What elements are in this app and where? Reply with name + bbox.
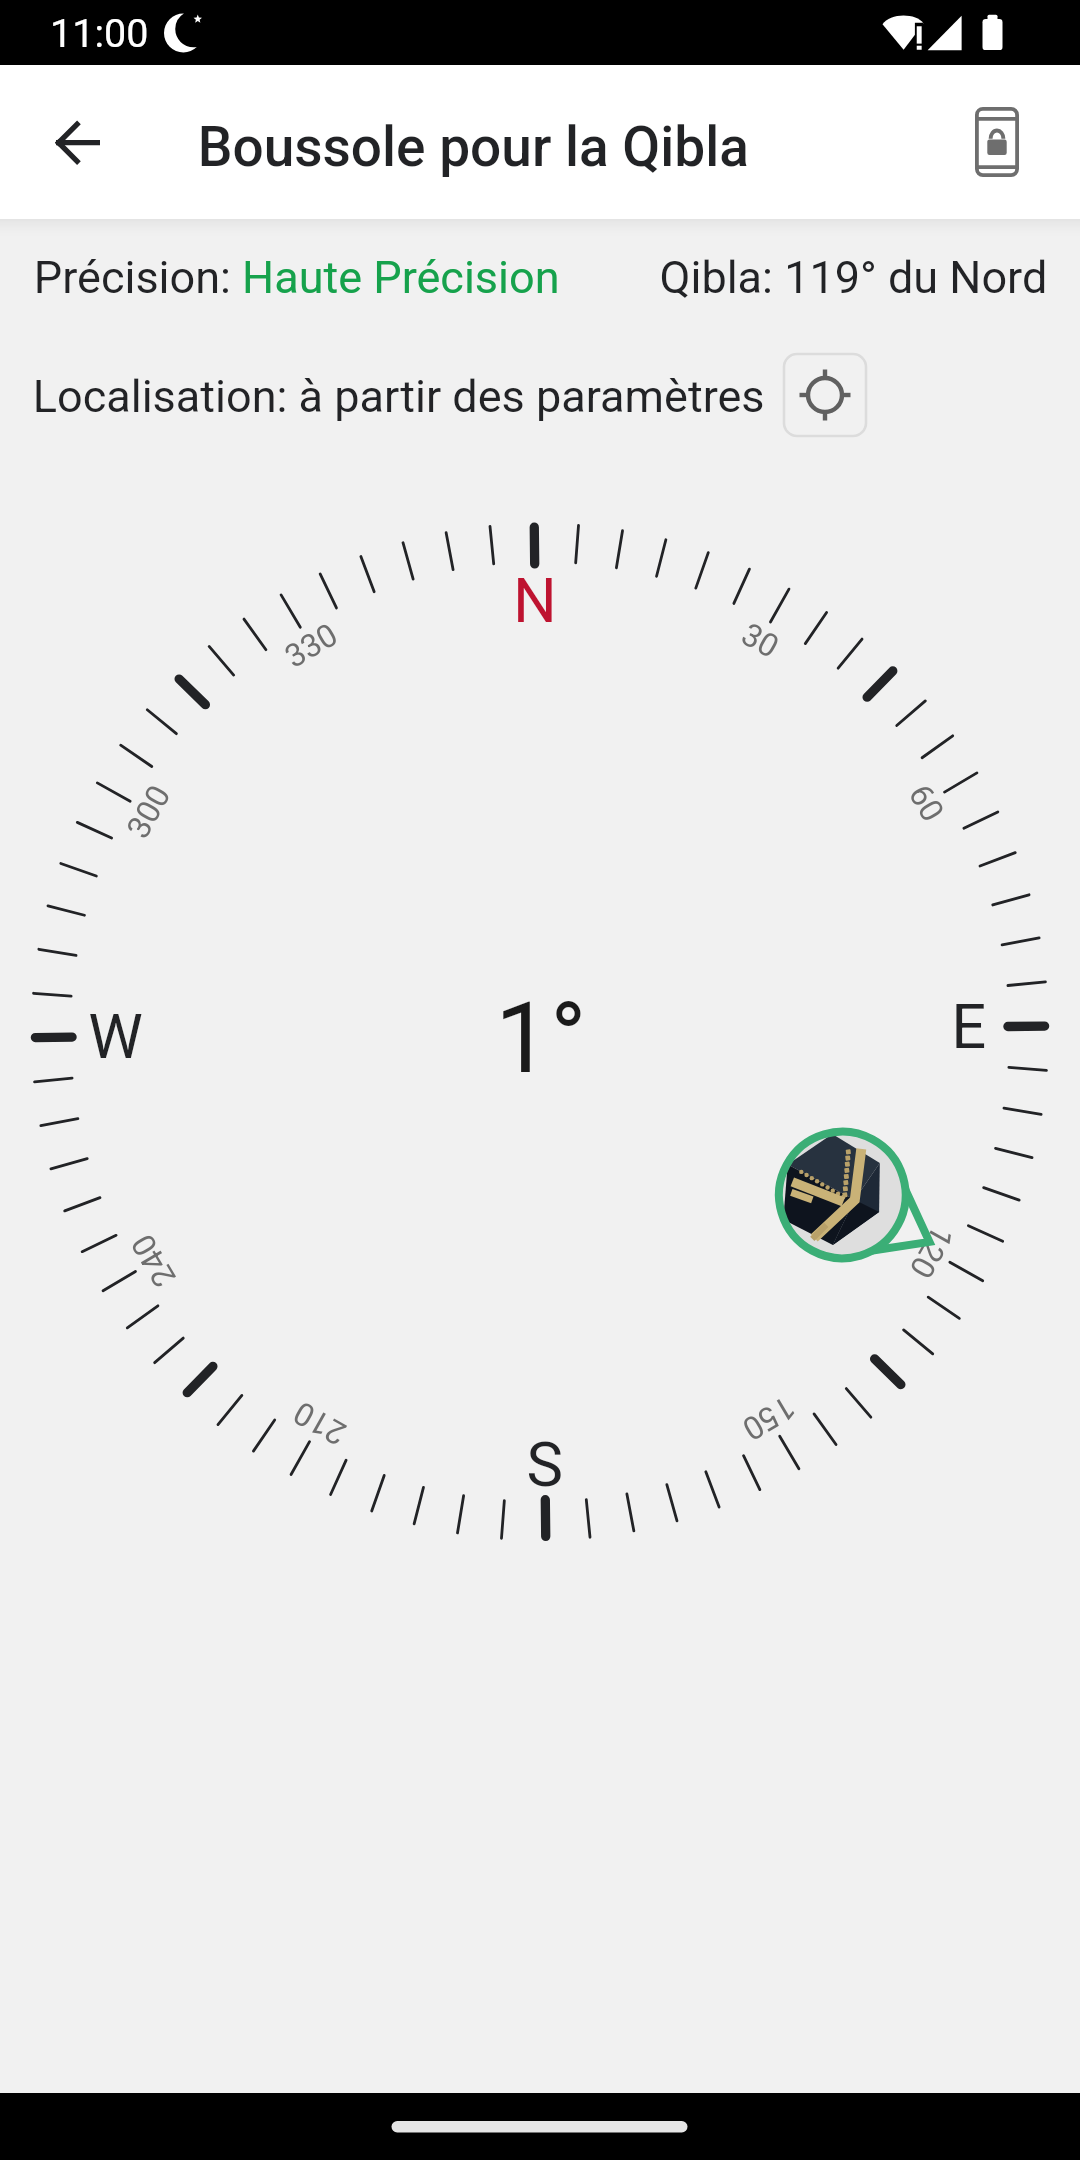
button[interactable]: Lock screen rotation <box>952 97 1042 187</box>
button[interactable]: Back <box>34 99 122 187</box>
button[interactable]: Use current location <box>784 354 866 436</box>
